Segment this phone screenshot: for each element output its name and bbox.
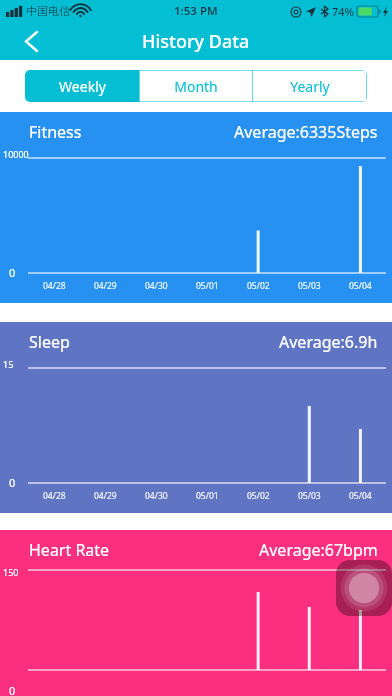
staticText: 0 [9,683,16,696]
staticText: 05/01 [196,490,219,502]
button[interactable]: Month [139,70,253,102]
staticText: 150 [3,566,19,578]
staticText: 05/04 [349,490,372,502]
staticText: 74% [332,4,354,19]
staticText: Month [174,77,218,96]
staticText: 04/28 [43,490,66,502]
button[interactable]: Weekly [25,70,139,102]
staticText: 04/30 [145,490,168,502]
staticText: Yearly [290,77,330,96]
staticText: 05/03 [298,490,321,502]
staticText: Sleep [29,331,70,353]
staticText: Average:6.9h [279,331,378,353]
button[interactable]: Back [14,24,48,58]
staticText: 05/03 [298,280,321,292]
staticText: 05/02 [247,280,270,292]
staticText: History Data [142,29,250,54]
button[interactable]: Heart Rate [0,530,392,696]
staticText: 05/04 [349,280,372,292]
button[interactable]: Fitness [0,112,392,303]
staticText: 04/29 [94,280,117,292]
staticText: Average:67bpm [259,539,378,561]
staticText: 0 [9,265,16,280]
staticText: 0 [9,475,16,490]
staticText: 04/29 [94,490,117,502]
staticText: 05/02 [247,490,270,502]
staticText: 15 [3,358,14,370]
button[interactable]: Assistive touch [336,560,392,616]
staticText: 05/01 [196,280,219,292]
staticText: 10000 [3,148,29,160]
staticText: Fitness [29,121,82,143]
staticText: 04/28 [43,280,66,292]
staticText: Average:6335Steps [234,121,378,143]
staticText: 04/30 [145,280,168,292]
staticText: 1:53 PM [174,3,218,19]
staticText: Heart Rate [29,539,110,561]
staticText: 中国电信 [26,4,70,18]
button[interactable]: Yearly [253,70,367,102]
staticText: Weekly [59,77,106,96]
button[interactable]: Sleep [0,322,392,513]
